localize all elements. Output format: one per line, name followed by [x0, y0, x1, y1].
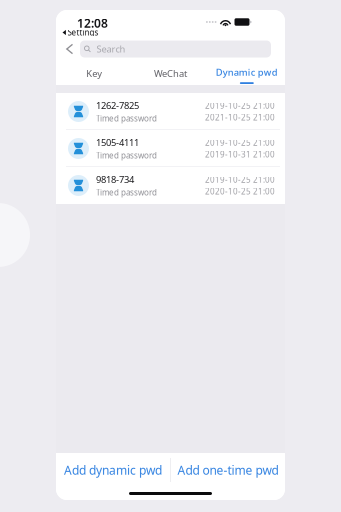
staticText: WeChat	[154, 67, 187, 80]
button[interactable]: Dynamic pwd	[209, 62, 285, 85]
staticText: Timed password	[96, 113, 157, 124]
staticText: Add one-time pwd	[177, 462, 278, 478]
staticText: 12:08	[77, 15, 108, 31]
staticText: 1262-7825	[96, 99, 139, 112]
button[interactable]: Back	[66, 38, 80, 60]
staticText: Timed password	[96, 187, 157, 198]
staticText: Dynamic pwd	[216, 66, 278, 78]
staticText: 1505-4111	[96, 136, 139, 149]
staticText: Search	[96, 43, 125, 55]
button[interactable]: 1262-7825	[56, 93, 285, 130]
button[interactable]: WeChat	[132, 62, 209, 85]
staticText: 2019-10-31 21:00	[205, 149, 275, 160]
staticText: Add dynamic pwd	[64, 462, 162, 478]
staticText: 2021-10-25 21:00	[205, 112, 275, 123]
staticText: 2019-10-25 21:00	[205, 174, 275, 185]
staticText: 2019-10-25 21:00	[205, 100, 275, 111]
button[interactable]: 9818-734	[56, 167, 285, 204]
staticText: 2020-10-25 21:00	[205, 186, 275, 197]
staticText: 9818-734	[96, 173, 134, 186]
button[interactable]: Key	[56, 62, 132, 85]
staticText: Settings	[67, 27, 98, 38]
staticText: Key	[86, 67, 102, 80]
staticText: Timed password	[96, 150, 157, 161]
staticText: 2019-10-25 21:00	[205, 137, 275, 148]
button[interactable]: Add one-time pwd	[171, 453, 285, 487]
button[interactable]: Add dynamic pwd	[56, 453, 170, 487]
button[interactable]: 1505-4111	[56, 130, 285, 167]
